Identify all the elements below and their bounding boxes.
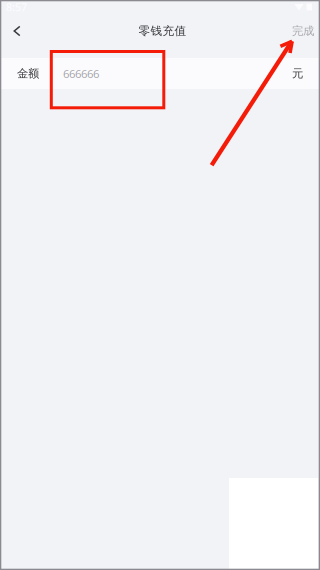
button[interactable]: Back bbox=[0, 14, 34, 48]
button[interactable]: 完成 bbox=[286, 14, 320, 48]
staticText: 零钱充值 bbox=[138, 24, 186, 38]
staticText: 元 bbox=[292, 66, 303, 81]
staticText: 666666 bbox=[63, 66, 99, 81]
staticText: 完成 bbox=[292, 24, 314, 38]
staticText: 8:57 bbox=[6, 0, 27, 14]
staticText: 金额 bbox=[17, 66, 39, 81]
